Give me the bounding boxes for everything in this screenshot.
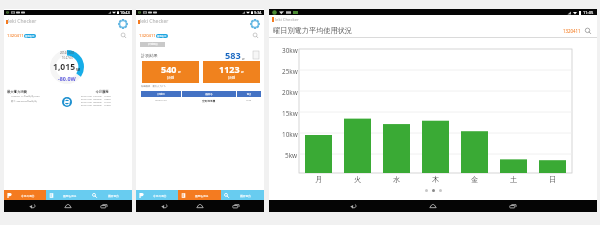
staticText: 空気清浄機 xyxy=(181,99,236,102)
staticText: 540 xyxy=(161,63,177,75)
staticText: 1320411 xyxy=(563,28,581,34)
staticText: 電力 xyxy=(237,93,261,96)
other: Home xyxy=(196,203,204,209)
button[interactable]: Search xyxy=(252,32,259,39)
staticText: 1015W xyxy=(104,95,111,98)
staticText: w xyxy=(242,57,245,61)
button[interactable]: 計測開始 xyxy=(140,42,165,47)
staticText: 月 xyxy=(315,175,323,184)
button[interactable]: 履歴表示 xyxy=(24,34,36,38)
staticText: leki Checker xyxy=(140,18,169,25)
other: Back xyxy=(349,203,357,209)
staticText: 履歴表示 xyxy=(157,35,167,38)
button[interactable]: Settings xyxy=(250,19,260,29)
staticText: 2014/11/01 09:28:00 xyxy=(81,98,102,101)
staticText: 履歴を見る xyxy=(63,194,77,197)
staticText: 10:27:00 xyxy=(62,56,73,60)
staticText: 5kw xyxy=(285,151,298,160)
staticText: 計測 xyxy=(228,76,236,81)
staticText: 1,015 xyxy=(53,61,76,73)
staticText: 最小 255.0W09月28日(日) xyxy=(11,100,38,103)
other: Recents xyxy=(100,203,108,209)
button[interactable]: Search xyxy=(584,27,592,35)
staticText: W xyxy=(76,67,81,73)
staticText: 最大電力消費 xyxy=(7,90,27,94)
staticText: 2014/11/01 xyxy=(141,99,181,102)
staticText: 25kw xyxy=(282,67,298,76)
other: Recents xyxy=(509,203,517,209)
staticText: 10:43 xyxy=(120,10,130,15)
staticText: 今月履歴 xyxy=(76,90,128,94)
staticText: 9:34 xyxy=(254,10,262,15)
staticText: 機器名 xyxy=(182,93,236,96)
staticText: w xyxy=(178,70,181,74)
staticText: leki Checker xyxy=(275,17,299,23)
button[interactable] xyxy=(253,51,259,59)
staticText: 1101W xyxy=(104,101,111,104)
staticText: 土 xyxy=(510,175,518,184)
staticText: 1320411 xyxy=(7,33,24,39)
other: Home xyxy=(429,203,437,209)
staticText: 機器電力 xyxy=(240,194,251,197)
staticText: 583 xyxy=(225,49,241,62)
staticText: 計測日 xyxy=(141,93,181,96)
staticText: 計測 xyxy=(167,76,175,81)
button[interactable]: 履歴を見る xyxy=(46,190,89,200)
staticText: 2014/11/01 xyxy=(60,51,75,55)
staticText: 15kw xyxy=(282,109,298,118)
staticText: 火 xyxy=(354,175,362,184)
staticText: 木 xyxy=(432,175,440,184)
staticText: 10kw xyxy=(282,130,298,139)
staticText: w xyxy=(241,70,244,74)
button[interactable]: 機器電力 xyxy=(221,190,264,200)
button[interactable]: 履歴表示 xyxy=(156,34,168,38)
staticText: 今日の電力 xyxy=(153,194,167,197)
staticText: 2014/11/01 05:28:00 xyxy=(81,104,102,107)
staticText: 機器電力 xyxy=(108,194,119,197)
other: Recents xyxy=(232,203,240,209)
staticText: 水 xyxy=(393,175,401,184)
staticText: 計測結果 xyxy=(141,53,158,58)
staticText: 11:05 xyxy=(583,10,594,15)
staticText: 各種機器 最大入力ﾊﾟﾜｰ xyxy=(141,85,167,88)
other: Back xyxy=(28,203,36,209)
button[interactable]: 1123 xyxy=(203,61,260,83)
other: Back xyxy=(160,203,168,209)
staticText: 2014/11/01 08:28:00 xyxy=(81,101,102,104)
staticText: leki Checker xyxy=(8,18,37,25)
staticText: 10 w xyxy=(236,99,261,102)
staticText: 履歴を見る xyxy=(195,194,209,197)
staticText: 1095W xyxy=(104,98,111,101)
staticText: 日 xyxy=(549,175,557,184)
staticText: 履歴表示 xyxy=(25,35,35,38)
staticText: 20kw xyxy=(282,88,298,97)
staticText: 1123 xyxy=(219,63,240,75)
button[interactable]: Search xyxy=(120,32,127,39)
staticText: 金 xyxy=(471,175,479,184)
staticText: -80.0W xyxy=(58,75,76,82)
staticText: 1105W xyxy=(104,104,111,107)
staticText: 30kw xyxy=(282,46,298,55)
staticText: 1240.0W 11月06日(木)10:53 xyxy=(11,95,40,98)
other: Home xyxy=(64,203,72,209)
staticText: 曜日別電力平均使用状況 xyxy=(273,26,353,35)
staticText: 1320411 xyxy=(139,33,156,39)
staticText: 計測開始 xyxy=(148,43,158,46)
button[interactable]: Settings xyxy=(118,19,128,29)
staticText: 今日の電力 xyxy=(21,194,35,197)
button[interactable]: 機器電力 xyxy=(89,190,132,200)
button[interactable]: 履歴を見る xyxy=(178,190,221,200)
button[interactable]: 540 xyxy=(142,61,199,83)
button[interactable]: 今日の電力 xyxy=(4,190,46,200)
button[interactable]: 今日の電力 xyxy=(136,190,178,200)
staticText: 2014/11/01 10:27:00 xyxy=(81,95,102,98)
